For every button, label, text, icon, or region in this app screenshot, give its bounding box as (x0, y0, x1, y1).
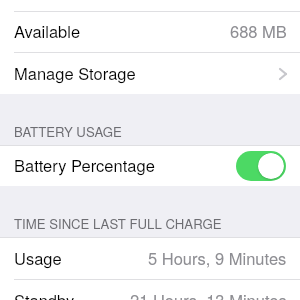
other: Open Manage Storage (279, 68, 287, 80)
staticText: BATTERY USAGE (14, 122, 122, 141)
staticText: Standby (14, 288, 75, 300)
staticText: Manage Storage (14, 61, 136, 85)
button[interactable]: Available (0, 12, 300, 52)
button[interactable]: Battery Percentage (0, 146, 300, 186)
staticText: 5 Hours, 9 Minutes (148, 246, 287, 270)
staticText: Available (14, 19, 81, 43)
staticText: 688 MB (230, 19, 287, 43)
button[interactable]: Usage (0, 238, 300, 279)
button[interactable]: Manage Storage (0, 53, 300, 94)
button[interactable]: Battery Percentage toggle, on (236, 151, 286, 181)
staticText: Battery Percentage (14, 153, 155, 177)
staticText: Usage (14, 246, 62, 270)
staticText: TIME SINCE LAST FULL CHARGE (14, 214, 222, 233)
staticText: 21 Hours, 13 Minutes (130, 288, 287, 300)
button[interactable]: Standby (0, 280, 300, 300)
